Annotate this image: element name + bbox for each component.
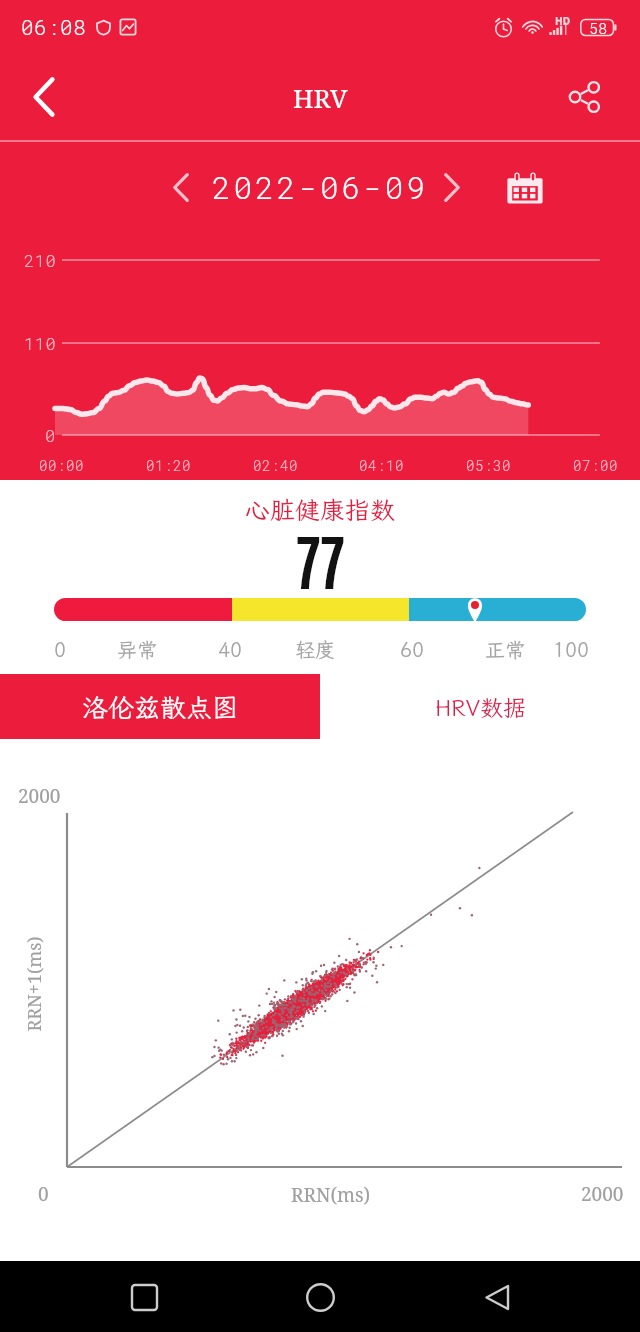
staticText: 洛伦兹散点图 (82, 690, 239, 724)
button[interactable]: Back (464, 1264, 530, 1330)
staticText: 07:00 (573, 456, 619, 474)
staticText: 00:00 (39, 456, 85, 474)
button[interactable]: Next day (430, 165, 474, 209)
staticText: 100 (553, 636, 589, 662)
staticText: 0 (38, 1181, 49, 1207)
staticText: 06:08 (21, 13, 87, 41)
staticText: 77 (296, 521, 345, 596)
staticText: 2000 (581, 1181, 624, 1207)
staticText: 2000 (18, 783, 61, 809)
staticText: 02:40 (253, 456, 299, 474)
staticText: 58 (589, 18, 608, 38)
staticText: HRV数据 (435, 692, 526, 722)
button[interactable]: Share (554, 67, 614, 127)
button[interactable]: Recents (111, 1264, 177, 1330)
staticText: HRV (293, 80, 348, 115)
button[interactable]: Previous day (159, 165, 203, 209)
staticText: 轻度 (295, 636, 335, 662)
staticText: 05:30 (466, 456, 512, 474)
button[interactable]: Back (12, 65, 76, 129)
staticText: HD (555, 14, 570, 28)
staticText: 异常 (117, 636, 157, 662)
button[interactable]: HRV数据 (320, 674, 640, 739)
staticText: 01:20 (146, 456, 192, 474)
staticText: 04:10 (359, 456, 405, 474)
staticText: 40 (218, 636, 242, 662)
staticText: 正常 (485, 636, 525, 662)
button[interactable]: Home (287, 1264, 353, 1330)
staticText: 210 (24, 249, 57, 271)
staticText: 110 (24, 332, 57, 354)
staticText: RRN(ms) (291, 1182, 371, 1208)
staticText: RRN+1(ms) (21, 935, 46, 1031)
staticText: 0 (45, 424, 56, 446)
button[interactable]: Calendar (500, 164, 550, 214)
staticText: 心脏健康指数 (245, 493, 396, 526)
button[interactable]: 洛伦兹散点图 (0, 674, 320, 739)
staticText: 60 (400, 636, 424, 662)
staticText: 2022-06-09 (212, 167, 429, 208)
staticText: 0 (54, 636, 66, 662)
